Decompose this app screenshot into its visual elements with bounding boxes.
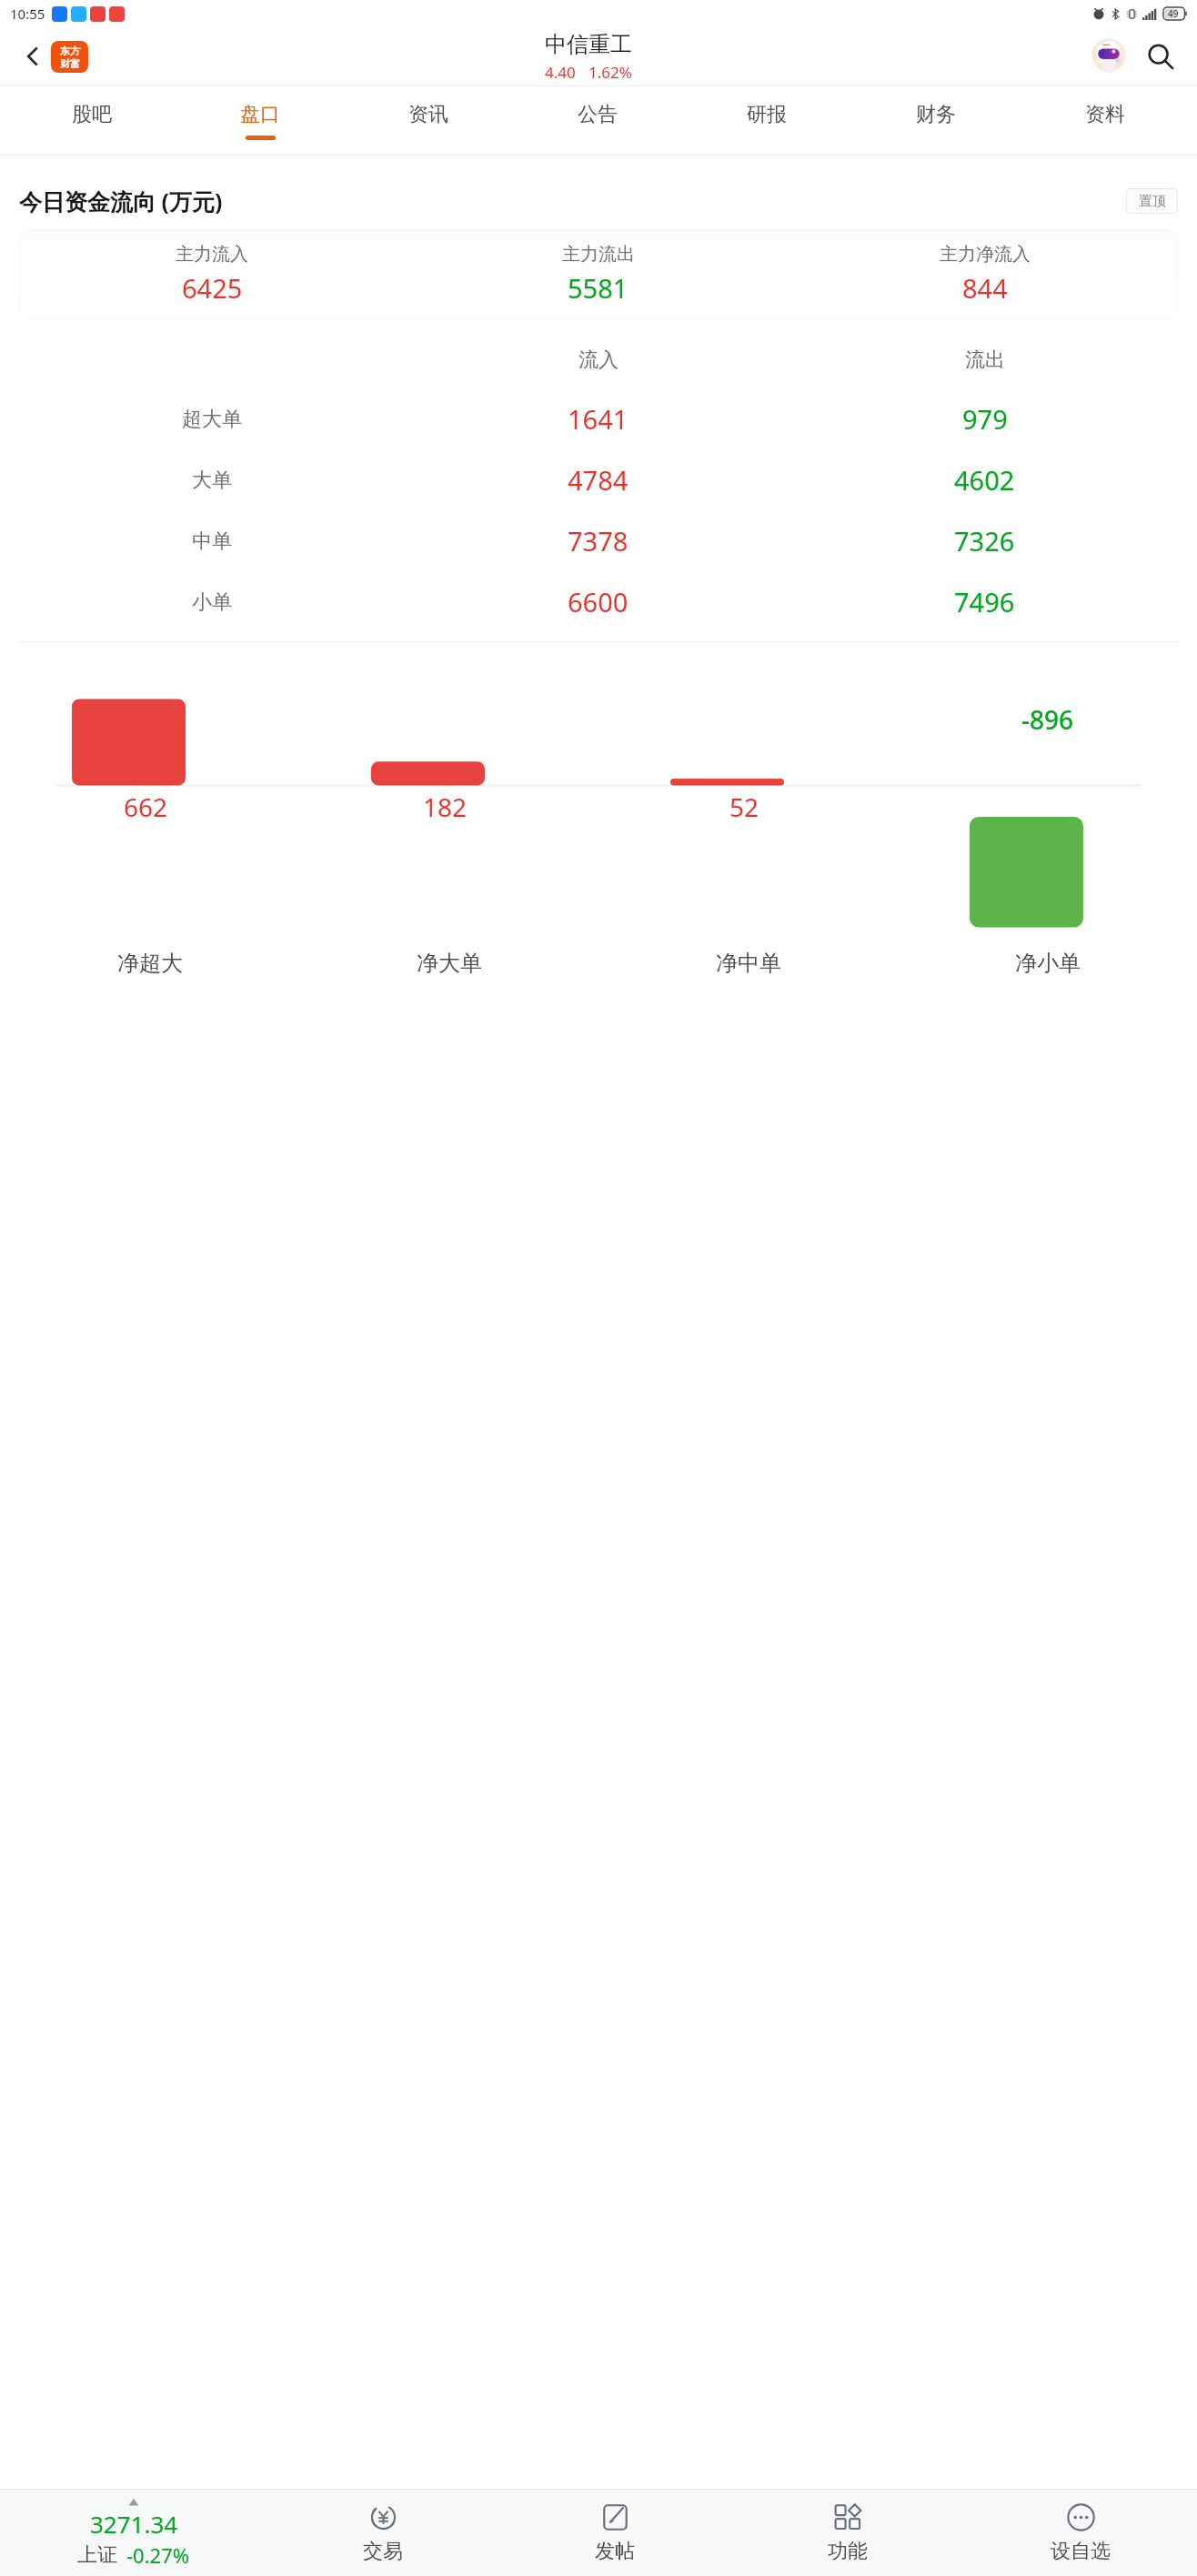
staticText: 股吧 xyxy=(72,102,112,127)
staticText: 主力流出 xyxy=(562,243,635,266)
staticText: 净超大 xyxy=(117,950,183,977)
button[interactable]: 主力流入 xyxy=(19,229,1178,319)
staticText: 182 xyxy=(423,790,468,824)
staticText: 交易 xyxy=(363,2539,403,2564)
staticText: 今日资金流向 (万元) xyxy=(19,186,223,216)
staticText: 流出 xyxy=(965,347,1005,373)
staticText: 上证 xyxy=(77,2542,117,2568)
button[interactable]: 3271.34 xyxy=(0,2490,267,2576)
button[interactable]: 交易 xyxy=(267,2490,498,2576)
staticText: 10:55 xyxy=(10,5,45,23)
button[interactable]: 公告 xyxy=(513,86,682,155)
button[interactable]: 研报 xyxy=(682,86,851,155)
staticText: 净大单 xyxy=(417,950,482,977)
button[interactable]: 超大单 xyxy=(19,388,1178,449)
staticText: -0.27% xyxy=(126,2541,190,2569)
staticText: 中单 xyxy=(192,528,232,554)
staticText: 4.40 xyxy=(545,62,576,83)
staticText: 设自选 xyxy=(1051,2539,1111,2564)
staticText: 6425 xyxy=(182,270,243,306)
staticText: 7496 xyxy=(954,584,1015,619)
button[interactable]: 净超大 xyxy=(0,943,299,983)
button[interactable]: Search xyxy=(1141,36,1181,76)
staticText: 财富 xyxy=(60,57,80,70)
staticText: 662 xyxy=(124,790,168,824)
staticText: 大单 xyxy=(192,468,232,493)
staticText: 公告 xyxy=(578,102,618,127)
button[interactable]: 股吧 xyxy=(7,86,176,155)
staticText: 5581 xyxy=(568,270,629,306)
button[interactable]: Back xyxy=(15,38,51,75)
staticText: 1.62% xyxy=(588,62,632,83)
button[interactable]: 资料 xyxy=(1021,86,1190,155)
staticText: 资料 xyxy=(1085,102,1125,127)
staticText: 东方 xyxy=(60,45,80,57)
staticText: 52 xyxy=(729,790,759,824)
button[interactable]: 发帖 xyxy=(498,2490,731,2576)
staticText: 功能 xyxy=(828,2539,868,2564)
button[interactable]: 置顶 xyxy=(1126,188,1178,214)
button[interactable]: East Money xyxy=(51,41,88,73)
staticText: 4784 xyxy=(568,462,629,498)
staticText: 7378 xyxy=(568,523,629,558)
staticText: 盘口 xyxy=(240,102,280,127)
staticText: 844 xyxy=(962,270,1008,306)
staticText: 小单 xyxy=(192,589,232,615)
staticText: 置顶 xyxy=(1139,193,1166,210)
button[interactable]: 功能 xyxy=(731,2490,964,2576)
button[interactable]: 净大单 xyxy=(299,943,598,983)
button[interactable]: 净中单 xyxy=(598,943,898,983)
staticText: 发帖 xyxy=(595,2539,635,2564)
staticText: 净中单 xyxy=(716,950,781,977)
staticText: 财务 xyxy=(916,102,956,127)
staticText: 主力流入 xyxy=(176,243,248,266)
button[interactable]: Assistant xyxy=(1088,35,1130,77)
staticText: 超大单 xyxy=(182,407,242,432)
staticText: -896 xyxy=(1021,702,1074,737)
button[interactable]: 财务 xyxy=(851,86,1021,155)
staticText: 4602 xyxy=(954,462,1015,498)
staticText: 49 xyxy=(1168,7,1179,20)
button[interactable]: 资讯 xyxy=(344,86,513,155)
staticText: 流入 xyxy=(578,347,619,373)
staticText: 中信重工 xyxy=(545,31,632,58)
button[interactable]: 中单 xyxy=(19,510,1178,571)
button[interactable]: 设自选 xyxy=(964,2490,1197,2576)
staticText: 净小单 xyxy=(1015,950,1081,977)
staticText: 6600 xyxy=(568,584,629,619)
staticText: 7326 xyxy=(954,523,1015,558)
staticText: 研报 xyxy=(747,102,787,127)
staticText: 979 xyxy=(962,401,1008,437)
button[interactable]: 小单 xyxy=(19,571,1178,632)
button[interactable]: 盘口 xyxy=(176,86,344,155)
button[interactable]: 大单 xyxy=(19,449,1178,510)
staticText: 1641 xyxy=(568,401,629,437)
button[interactable]: 净小单 xyxy=(898,943,1197,983)
staticText: 主力净流入 xyxy=(940,243,1031,266)
staticText: 资讯 xyxy=(408,102,448,127)
staticText: 3271.34 xyxy=(90,2508,178,2540)
